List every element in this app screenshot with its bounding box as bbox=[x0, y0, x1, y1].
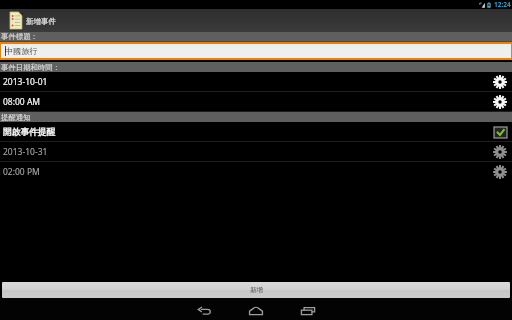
button[interactable]: Home bbox=[233, 301, 279, 320]
button[interactable]: 08:00 AM bbox=[0, 92, 512, 112]
button[interactable]: 新增事件 bbox=[0, 9, 62, 32]
other: Enable event reminder bbox=[494, 127, 507, 138]
button[interactable]: 2013-10-01 bbox=[0, 72, 512, 92]
button[interactable]: 新增 bbox=[2, 282, 510, 298]
staticText: 事件標題： bbox=[1, 32, 38, 41]
staticText: 02:00 PM bbox=[3, 166, 40, 178]
button[interactable]: 2013-10-31 bbox=[0, 142, 512, 162]
button[interactable]: 中國旅行 bbox=[1, 44, 511, 58]
staticText: 08:00 AM bbox=[3, 96, 41, 108]
staticText: 2013-10-01 bbox=[3, 76, 48, 88]
other: Settings bbox=[493, 75, 507, 89]
other: Settings bbox=[493, 95, 507, 109]
staticText: 提醒通知 bbox=[1, 113, 31, 122]
other: Settings bbox=[493, 165, 507, 179]
staticText: 中國旅行 bbox=[5, 46, 38, 56]
staticText: 2013-10-31 bbox=[3, 146, 48, 158]
staticText: 新增事件 bbox=[26, 17, 56, 26]
other: Settings bbox=[493, 145, 507, 159]
staticText: 事件日期和時間： bbox=[1, 63, 61, 72]
button[interactable]: 02:00 PM bbox=[0, 162, 512, 182]
staticText: 12:24 bbox=[494, 0, 511, 9]
button[interactable]: Back bbox=[181, 301, 227, 320]
button[interactable]: 開啟事件提醒 bbox=[0, 122, 512, 142]
staticText: 新增 bbox=[250, 286, 263, 294]
button[interactable]: Recents bbox=[285, 301, 331, 320]
staticText: 開啟事件提醒 bbox=[3, 127, 56, 138]
